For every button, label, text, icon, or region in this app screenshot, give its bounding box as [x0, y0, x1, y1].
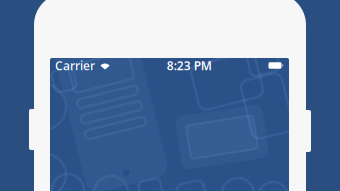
staticText: 8:23 PM: [167, 57, 212, 73]
staticText: Carrier: [55, 57, 95, 73]
